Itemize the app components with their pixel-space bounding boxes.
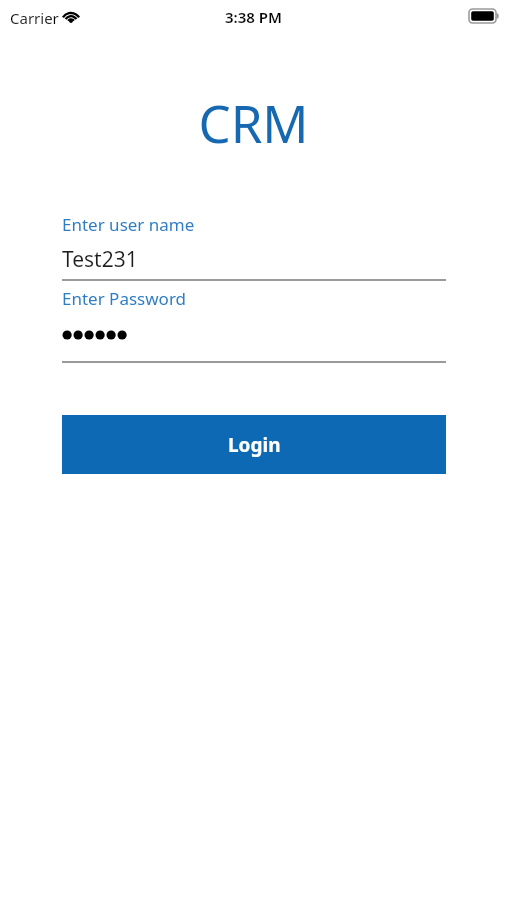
staticText: Test231 [62,245,138,274]
staticText: CRM [0,88,507,157]
other: Wi-Fi signal [61,9,81,24]
button[interactable]: Enter Password [62,287,187,310]
other: Battery full [469,9,499,23]
button[interactable]: Login [62,415,446,474]
staticText: Carrier [10,8,59,28]
staticText: 3:38 PM [225,7,282,27]
staticText: Login [228,432,281,458]
button[interactable]: Enter user name [62,213,195,236]
button[interactable] [62,320,446,350]
button[interactable]: Test231 [62,244,446,274]
